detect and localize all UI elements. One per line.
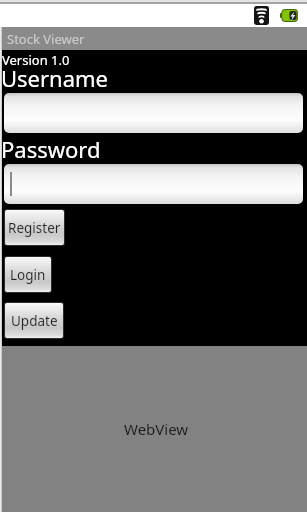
staticText: WebView: [124, 419, 189, 439]
button[interactable]: Update: [5, 303, 63, 338]
staticText: Register: [8, 219, 61, 237]
button[interactable]: [4, 164, 303, 204]
staticText: Login: [10, 266, 46, 284]
other: Battery charging: [280, 9, 298, 22]
staticText: Stock Viewer: [7, 30, 85, 48]
button[interactable]: Stock Viewer: [0, 27, 307, 50]
button[interactable]: Register: [5, 210, 64, 245]
button[interactable]: [4, 93, 303, 133]
button[interactable]: Login: [5, 257, 51, 292]
staticText: Password: [1, 134, 101, 164]
staticText: Version 1.0: [2, 51, 70, 69]
staticText: Update: [11, 312, 58, 330]
other: Wi-Fi signal: [254, 6, 269, 25]
staticText: Username: [1, 63, 109, 93]
